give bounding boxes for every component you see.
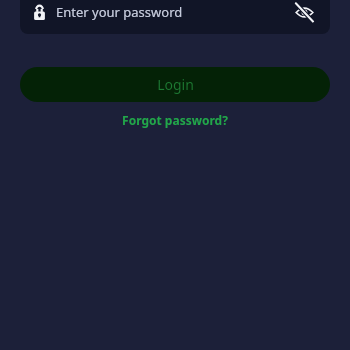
button[interactable]: Login <box>20 67 330 102</box>
staticText: Forgot password? <box>122 112 228 128</box>
button[interactable]: Show password <box>290 0 318 26</box>
staticText: Login <box>157 75 194 94</box>
button[interactable]: Enter your password <box>20 0 330 34</box>
staticText: Enter your password <box>56 3 183 21</box>
button[interactable]: Forgot password? <box>114 108 236 132</box>
